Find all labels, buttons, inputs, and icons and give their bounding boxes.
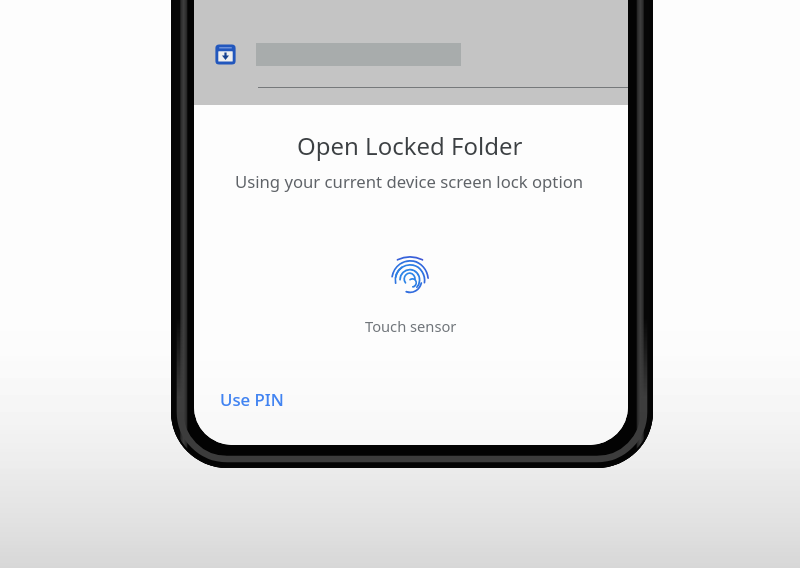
button[interactable]: Save to device <box>214 43 237 66</box>
staticText: Touch sensor <box>365 316 457 336</box>
staticText: Open Locked Folder <box>297 129 523 162</box>
staticText: Using your current device screen lock op… <box>235 170 584 193</box>
button[interactable]: Use PIN <box>206 380 298 419</box>
staticText: Use PIN <box>220 388 284 411</box>
